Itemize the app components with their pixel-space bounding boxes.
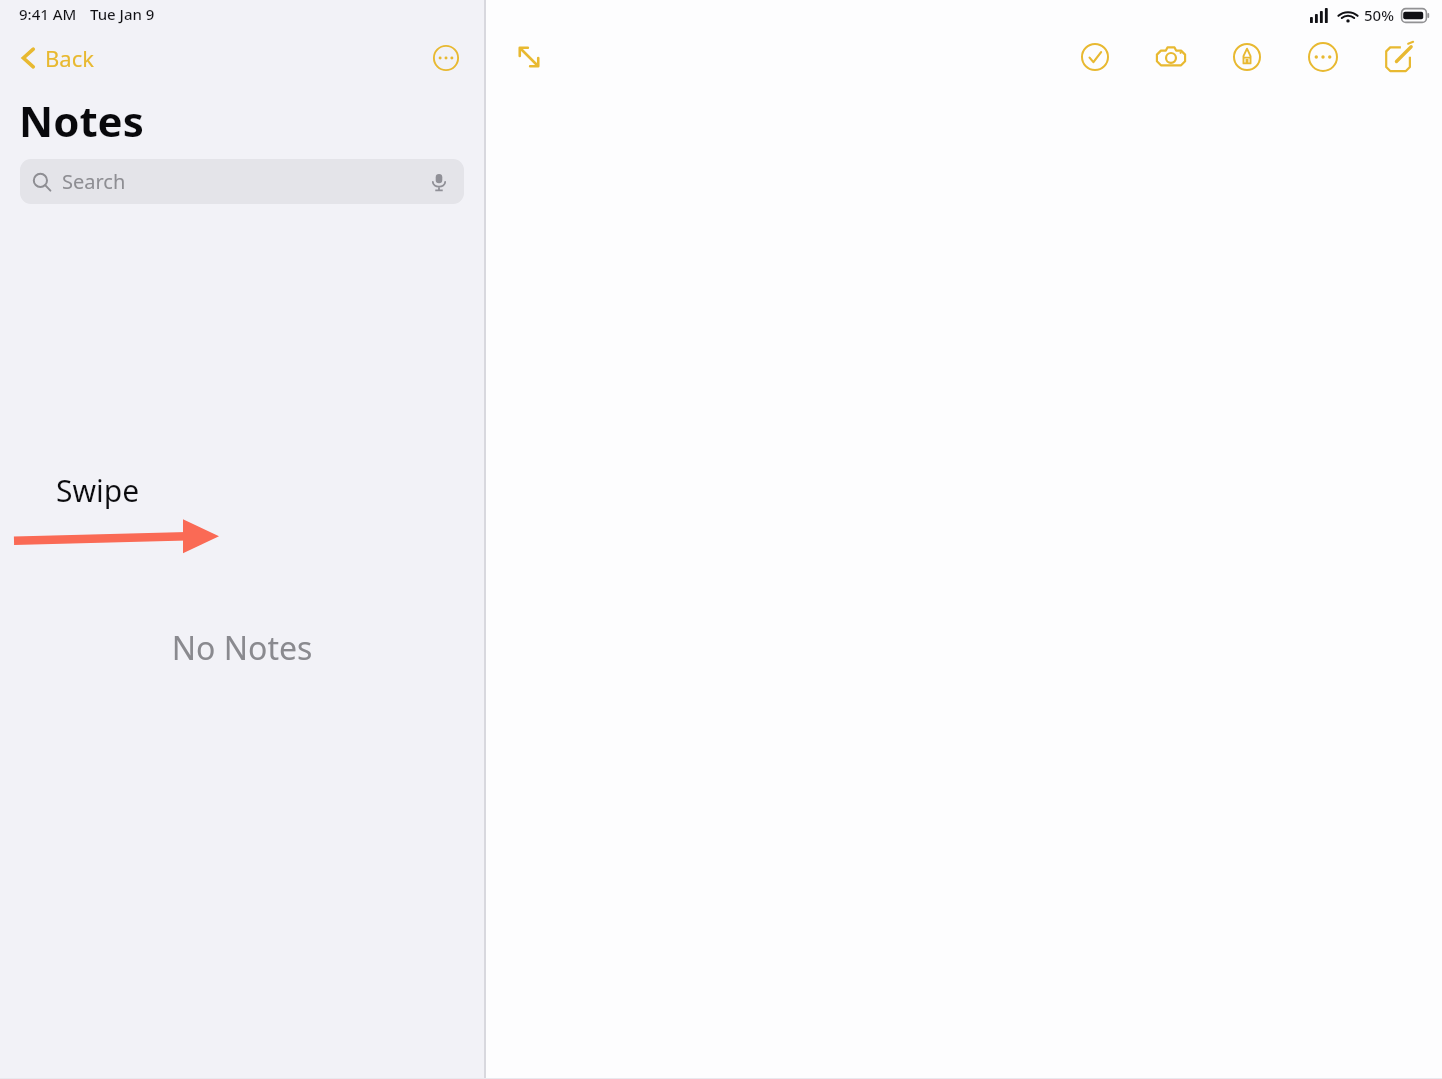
button[interactable]: Search (20, 159, 464, 204)
staticText: Notes (19, 92, 144, 149)
staticText: 9:41 AM (19, 4, 77, 24)
staticText: Tue Jan 9 (90, 4, 155, 24)
staticText: 50% (1364, 5, 1394, 25)
button[interactable]: Mark as checklist (1072, 34, 1118, 80)
button[interactable]: Expand (506, 34, 552, 80)
button[interactable]: Back (14, 39, 100, 77)
button[interactable]: Camera (1148, 34, 1194, 80)
button[interactable]: Voice search (426, 169, 452, 195)
staticText: Search (62, 168, 126, 195)
button[interactable]: Compose (1376, 34, 1422, 80)
staticText: Back (45, 43, 94, 73)
button[interactable]: More (1300, 34, 1346, 80)
button[interactable]: Markup (1224, 34, 1270, 80)
staticText: No Notes (0, 626, 484, 670)
button[interactable]: More options (428, 40, 464, 76)
staticText: Swipe (56, 470, 140, 511)
